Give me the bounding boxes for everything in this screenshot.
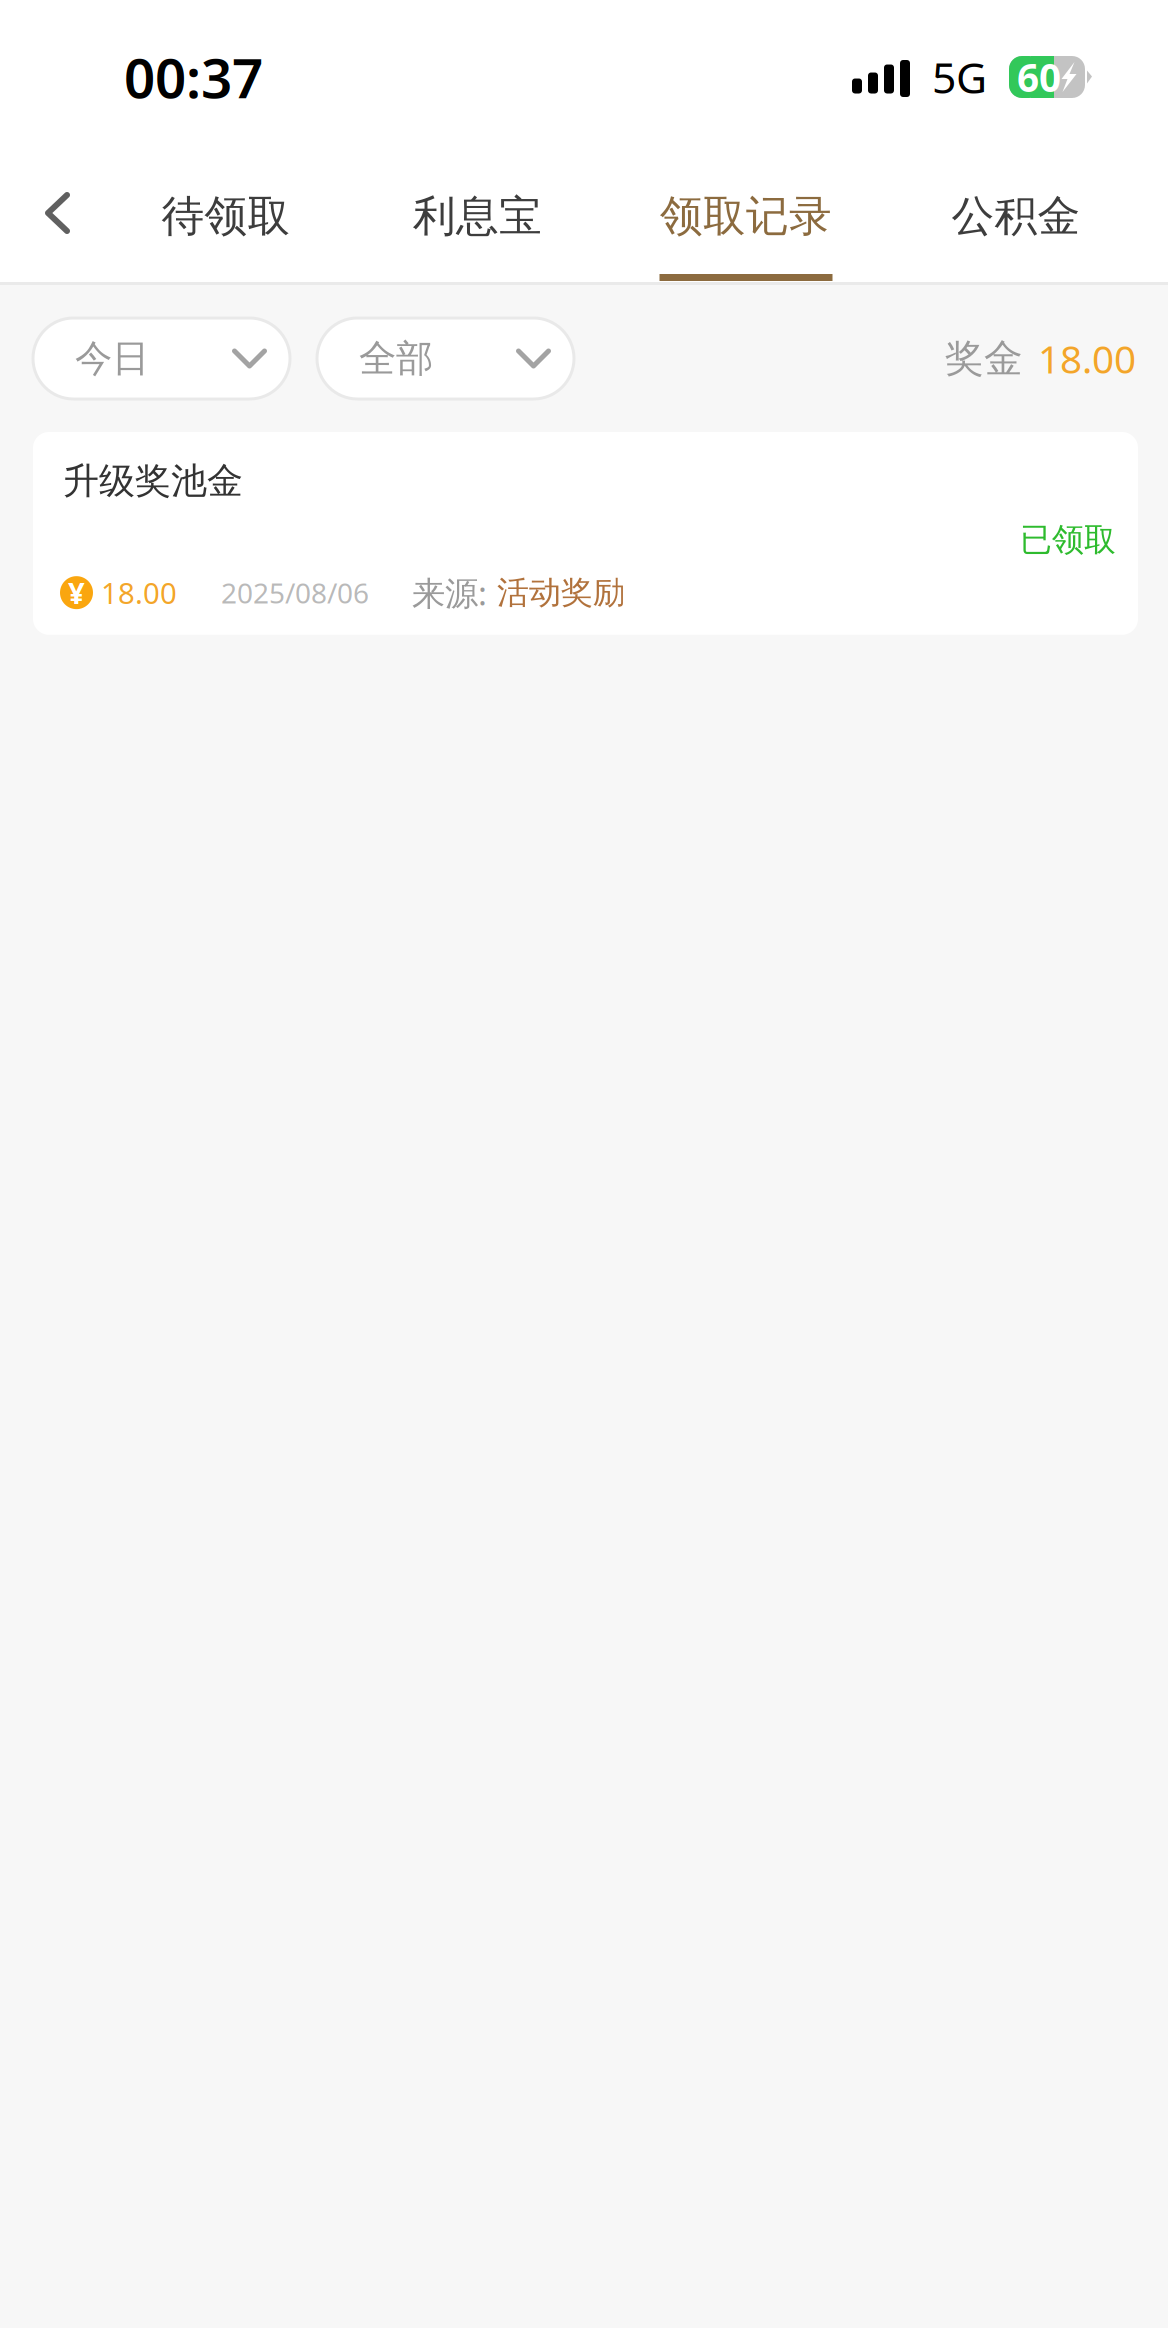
staticText: 00:37 — [124, 41, 263, 113]
button[interactable]: 升级奖池金 — [33, 432, 1138, 635]
staticText: 奖金 — [945, 335, 1023, 382]
button[interactable]: 今日 — [33, 318, 290, 399]
staticText: 全部 — [359, 336, 433, 381]
button[interactable]: 利息宝 — [354, 144, 601, 282]
button[interactable]: 公积金 — [891, 144, 1141, 282]
staticText: 升级奖池金 — [63, 459, 243, 503]
button[interactable]: 待领取 — [98, 144, 354, 282]
staticText: 18.00 — [101, 573, 177, 612]
staticText: 领取记录 — [660, 190, 832, 242]
staticText: 5G — [932, 49, 987, 105]
staticText: 公积金 — [951, 190, 1080, 242]
button[interactable]: Back — [0, 144, 98, 282]
staticText: 18.00 — [1038, 333, 1136, 384]
staticText: 2025/08/06 — [221, 574, 369, 611]
staticText: 来源: — [412, 570, 487, 615]
button[interactable]: 领取记录 — [601, 144, 891, 282]
staticText: 已领取 — [1020, 520, 1116, 559]
button[interactable]: 全部 — [317, 318, 574, 399]
staticText: ¥ — [68, 573, 85, 612]
staticText: 活动奖励 — [497, 573, 625, 612]
staticText: 利息宝 — [413, 190, 542, 242]
staticText: 今日 — [75, 336, 149, 381]
staticText: 60 — [1017, 51, 1061, 103]
staticText: 待领取 — [161, 190, 290, 242]
